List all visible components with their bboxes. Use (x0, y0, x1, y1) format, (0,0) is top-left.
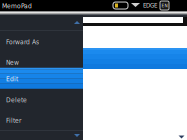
staticText: Edit (6, 75, 18, 83)
staticText: Forward As (6, 38, 39, 46)
button[interactable]: Forward As (0, 31, 83, 51)
staticText: Delete (6, 96, 27, 104)
staticText: EDGE (143, 2, 157, 9)
staticText: Filter (6, 116, 21, 124)
button[interactable] (0, 131, 83, 140)
button[interactable]: Filter (0, 109, 83, 130)
staticText: New (6, 58, 19, 66)
staticText: MemoPad (2, 2, 32, 10)
button[interactable] (0, 15, 83, 30)
button[interactable]: Edit (0, 68, 83, 88)
staticText: EN (161, 3, 167, 8)
button[interactable]: New (0, 51, 83, 72)
button[interactable]: Delete (0, 89, 83, 109)
